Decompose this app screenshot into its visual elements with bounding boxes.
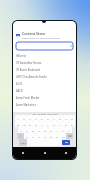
staticText: I [60, 123, 61, 126]
button[interactable]: A [18, 127, 24, 133]
staticText: 8 [59, 117, 61, 120]
button[interactable]: M [60, 133, 66, 139]
button[interactable]: N [54, 133, 60, 139]
button[interactable]: Acme Fresh Market [13, 94, 76, 101]
button[interactable]: Clear search [16, 42, 73, 50]
button[interactable]: 8 [57, 115, 63, 121]
staticText: P [71, 123, 73, 126]
staticText: 7 [53, 117, 55, 120]
button[interactable]: B [48, 133, 54, 139]
staticText: T [41, 123, 43, 126]
button[interactable]: I [57, 121, 63, 127]
button[interactable]: Acme Marketers [13, 101, 76, 108]
staticText: Q [17, 123, 19, 126]
button[interactable]: F [36, 127, 42, 133]
staticText: 78 Santa Ana Terrace [16, 61, 42, 65]
button[interactable]: 9 [63, 115, 69, 121]
button[interactable]: ⇧ [17, 133, 24, 139]
staticText: C [38, 135, 40, 138]
staticText: S [26, 129, 28, 132]
button[interactable]: 5 [39, 115, 45, 121]
button[interactable]: T [39, 121, 45, 127]
button[interactable]: C [36, 133, 42, 139]
button[interactable]: 1 [15, 115, 21, 121]
button[interactable]: 4 [33, 115, 39, 121]
button[interactable]: A8CD [13, 87, 76, 94]
button[interactable]: K [60, 127, 66, 133]
button[interactable]: 4381 Clos Alma de Sevilla [13, 73, 76, 80]
staticText: 2 [23, 117, 25, 120]
button[interactable]: Z [24, 133, 30, 139]
button[interactable]: A123 [13, 80, 76, 87]
button[interactable]: 7 [51, 115, 57, 121]
staticText: U [53, 123, 55, 126]
staticText: Acme Fresh Market [16, 96, 40, 100]
button[interactable]: 78 Santa Ana Terrace [13, 59, 76, 66]
button[interactable]: 6 [45, 115, 51, 121]
staticText: ⌫ [68, 135, 72, 138]
button[interactable]: E [27, 121, 33, 127]
staticText: 4381 Clos Alma de Sevilla [16, 75, 47, 79]
button[interactable]: Enter [62, 140, 70, 145]
button[interactable]: P [69, 121, 75, 127]
button[interactable]: R [33, 121, 39, 127]
button[interactable]: Q [15, 121, 21, 127]
staticText: ?123 [20, 141, 26, 144]
button[interactable]: J [54, 127, 60, 133]
staticText: O [65, 123, 67, 126]
staticText: X [32, 135, 34, 138]
staticText: 6 [47, 117, 49, 120]
button[interactable]: G [42, 127, 48, 133]
button[interactable]: W [21, 121, 27, 127]
staticText: B [50, 135, 52, 138]
button[interactable]: L [66, 127, 72, 133]
staticText: E [29, 123, 31, 126]
staticText: M [62, 135, 65, 138]
button[interactable]: Hillcrest [13, 52, 76, 59]
button[interactable]: X [30, 133, 36, 139]
button[interactable]: U [51, 121, 57, 127]
staticText: L [68, 129, 70, 132]
staticText: 9 [65, 117, 67, 120]
staticText: Current Store [22, 31, 46, 36]
staticText: . [59, 141, 60, 144]
button[interactable]: Y [45, 121, 51, 127]
staticText: N [56, 135, 58, 138]
staticText: ⇧ [19, 135, 22, 138]
button[interactable]: V [42, 133, 48, 139]
staticText: A8CD [16, 89, 23, 93]
staticText: Please select the store you're visiting [22, 37, 60, 40]
button[interactable]: ⌫ [66, 133, 73, 139]
button[interactable]: 0 [69, 115, 75, 121]
staticText: H [50, 129, 52, 132]
staticText: J [57, 129, 58, 132]
button[interactable]: ?123 [19, 139, 27, 146]
button[interactable]: 78 Busch Boulevard [13, 66, 76, 73]
staticText: Y [47, 123, 49, 126]
staticText: 3 [29, 117, 31, 120]
button[interactable]: 3 [27, 115, 33, 121]
staticText: W [23, 123, 26, 126]
staticText: 78 Busch Boulevard [16, 68, 41, 72]
staticText: 1 [17, 117, 19, 120]
button[interactable]: O [63, 121, 69, 127]
staticText: 5 [41, 117, 43, 120]
staticText: 4 [35, 117, 37, 120]
button[interactable]: H [48, 127, 54, 133]
button[interactable]: S [24, 127, 30, 133]
staticText: F [38, 129, 40, 132]
staticText: D [32, 129, 34, 132]
staticText: A [20, 129, 22, 132]
button[interactable]: D [30, 127, 36, 133]
staticText: Acme Acme Fresh Acme Market [32, 113, 58, 115]
staticText: Acme Marketers [16, 103, 36, 107]
button[interactable]: 2 [21, 115, 27, 121]
